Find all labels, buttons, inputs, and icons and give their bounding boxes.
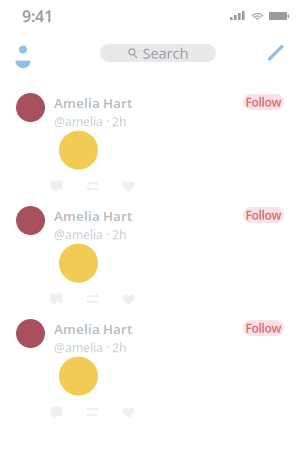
button[interactable]: Reply <box>50 406 86 422</box>
button[interactable]: Search <box>82 44 216 62</box>
staticText: @amelia · 2h <box>54 114 126 130</box>
button[interactable]: Repost <box>86 180 122 196</box>
button[interactable]: Compose <box>258 37 294 69</box>
button[interactable]: Like <box>122 180 138 196</box>
button[interactable]: Follow <box>243 94 284 110</box>
staticText: @amelia · 2h <box>54 227 126 243</box>
button[interactable]: Amelia Hart <box>0 310 300 423</box>
staticText: Follow <box>245 94 281 110</box>
button[interactable]: Like <box>122 406 138 422</box>
button[interactable]: Profile <box>6 44 40 62</box>
button[interactable]: Follow <box>243 207 284 223</box>
button[interactable]: Amelia Hart <box>0 84 300 197</box>
button[interactable]: Repost <box>86 293 122 309</box>
button[interactable]: Amelia Hart <box>0 197 300 310</box>
staticText: Follow <box>245 320 281 336</box>
staticText: Amelia Hart <box>54 320 132 338</box>
staticText: Follow <box>245 207 281 223</box>
staticText: Search <box>142 43 188 63</box>
button[interactable]: Repost <box>86 406 122 422</box>
button[interactable]: Reply <box>50 293 86 309</box>
button[interactable]: Like <box>122 293 138 309</box>
staticText: @amelia · 2h <box>54 340 126 356</box>
button[interactable]: Reply <box>50 180 86 196</box>
button[interactable]: Follow <box>243 320 284 336</box>
staticText: Amelia Hart <box>54 94 132 112</box>
staticText: Amelia Hart <box>54 207 132 225</box>
staticText: 9:41 <box>22 5 53 27</box>
